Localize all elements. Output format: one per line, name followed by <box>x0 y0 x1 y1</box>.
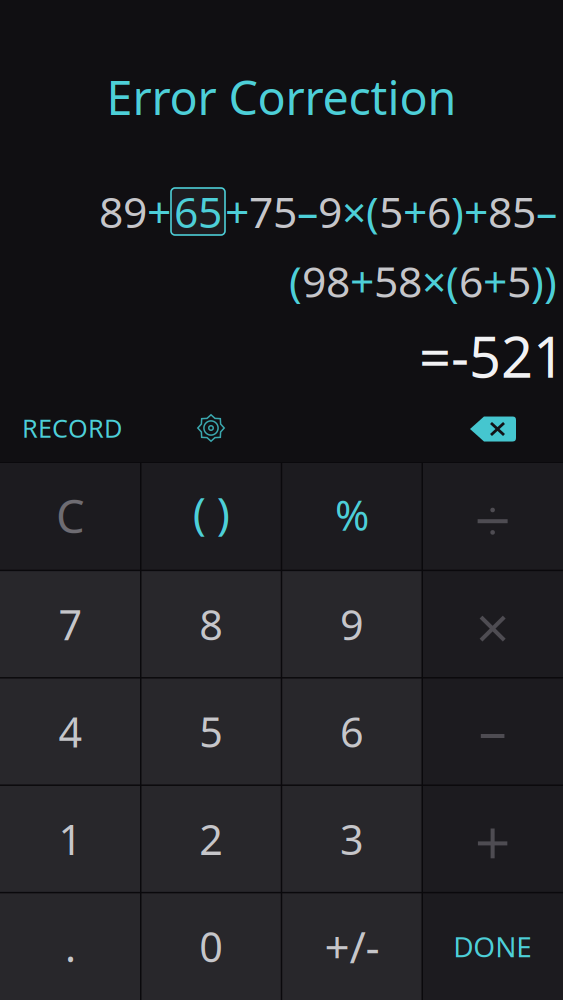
button[interactable]: 0 <box>141 893 282 1000</box>
button[interactable]: % <box>281 463 422 570</box>
button[interactable]: 6 <box>281 678 422 785</box>
staticText: 0 <box>199 919 223 974</box>
staticText: ( <box>289 253 302 309</box>
button[interactable]: 5 <box>141 678 282 785</box>
button[interactable]: 7 <box>0 570 141 678</box>
staticText: ( ) <box>193 483 230 541</box>
button[interactable]: 1 <box>0 785 141 893</box>
staticText: 4 <box>58 704 82 759</box>
staticText: + <box>483 253 507 309</box>
staticText: 3 <box>340 811 364 866</box>
staticText: =-521 <box>419 319 563 393</box>
button[interactable]: Multiply <box>422 570 563 678</box>
staticText: 6 <box>340 704 364 759</box>
staticText: – <box>536 183 557 240</box>
button[interactable]: +/- <box>281 893 422 1000</box>
staticText: 9 <box>340 597 364 652</box>
staticText: % <box>335 487 369 542</box>
staticText: ×( <box>422 253 459 309</box>
staticText: ×( <box>342 183 379 240</box>
button[interactable]: C <box>0 463 141 570</box>
staticText: + <box>147 183 171 240</box>
staticText: 75 <box>249 183 297 240</box>
staticText: 1 <box>58 811 82 866</box>
staticText: C <box>56 486 85 546</box>
staticText: 2 <box>199 811 223 866</box>
staticText: )) <box>531 253 557 309</box>
staticText: + <box>403 183 427 240</box>
button[interactable]: DONE <box>422 893 563 1000</box>
button[interactable]: RECORD <box>0 404 142 452</box>
staticText: 89 <box>99 183 147 240</box>
staticText: 85 <box>488 183 536 240</box>
staticText: – <box>297 183 318 240</box>
button[interactable]: 4 <box>0 678 141 785</box>
staticText: . <box>65 919 76 974</box>
staticText: 58 <box>374 253 422 309</box>
staticText: 5 <box>507 253 531 309</box>
button[interactable]: ( ) <box>141 463 282 570</box>
staticText: Error Correction <box>106 66 456 128</box>
staticText: + <box>225 183 249 240</box>
staticText: DONE <box>453 928 532 965</box>
button[interactable]: 9 <box>281 570 422 678</box>
button[interactable]: Divide <box>422 463 563 570</box>
staticText: 8 <box>199 597 223 652</box>
staticText: 6 <box>459 253 483 309</box>
staticText: )+ <box>451 183 488 240</box>
staticText: 5 <box>379 183 403 240</box>
button[interactable]: Plus <box>422 785 563 893</box>
staticText: + <box>350 253 374 309</box>
button[interactable]: Settings <box>187 404 235 452</box>
staticText: 6 <box>427 183 451 240</box>
button[interactable]: Minus <box>422 678 563 785</box>
staticText: 7 <box>58 597 82 652</box>
staticText: RECORD <box>22 411 122 445</box>
staticText: 9 <box>318 183 342 240</box>
button[interactable]: 2 <box>141 785 282 893</box>
staticText: +/- <box>324 917 379 975</box>
staticText: 98 <box>302 253 350 309</box>
button[interactable]: Delete <box>461 404 525 452</box>
button[interactable]: . <box>0 893 141 1000</box>
staticText: 5 <box>199 704 223 759</box>
button[interactable]: 3 <box>281 785 422 893</box>
button[interactable]: 8 <box>141 570 282 678</box>
staticText: 65 <box>174 183 222 240</box>
